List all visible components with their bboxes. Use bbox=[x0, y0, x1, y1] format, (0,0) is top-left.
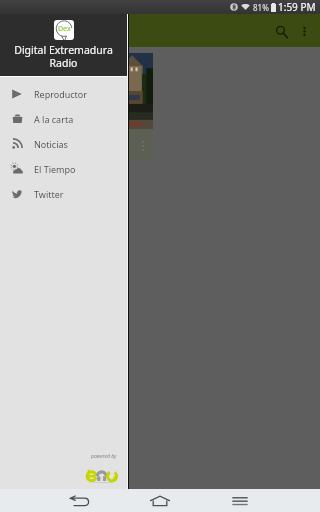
button[interactable]: Reproductor bbox=[0, 81, 127, 106]
staticText: powered by bbox=[91, 453, 117, 460]
staticText: Twitter bbox=[34, 188, 64, 200]
button[interactable]: Home bbox=[140, 489, 180, 512]
staticText: Noticias bbox=[34, 138, 68, 150]
staticText: El Tiempo bbox=[34, 163, 76, 175]
button[interactable]: Search bbox=[268, 18, 294, 44]
staticText: Dex bbox=[58, 24, 71, 34]
staticText: Digital Extremadura Radio bbox=[6, 43, 121, 70]
button[interactable]: More options bbox=[294, 21, 314, 41]
staticText: A la carta bbox=[34, 113, 74, 125]
button[interactable]: Recent apps bbox=[220, 489, 260, 512]
staticText: Reproductor bbox=[34, 88, 88, 100]
button[interactable]: A la carta bbox=[0, 106, 127, 131]
button[interactable]: Noticias bbox=[0, 131, 127, 156]
button[interactable]: Back bbox=[60, 489, 100, 512]
staticText: 81% bbox=[253, 2, 269, 13]
button[interactable]: More options bbox=[140, 140, 145, 151]
button[interactable]: Twitter bbox=[0, 181, 127, 206]
button[interactable]: El Tiempo bbox=[0, 156, 127, 181]
staticText: 1:59 PM bbox=[278, 0, 316, 14]
